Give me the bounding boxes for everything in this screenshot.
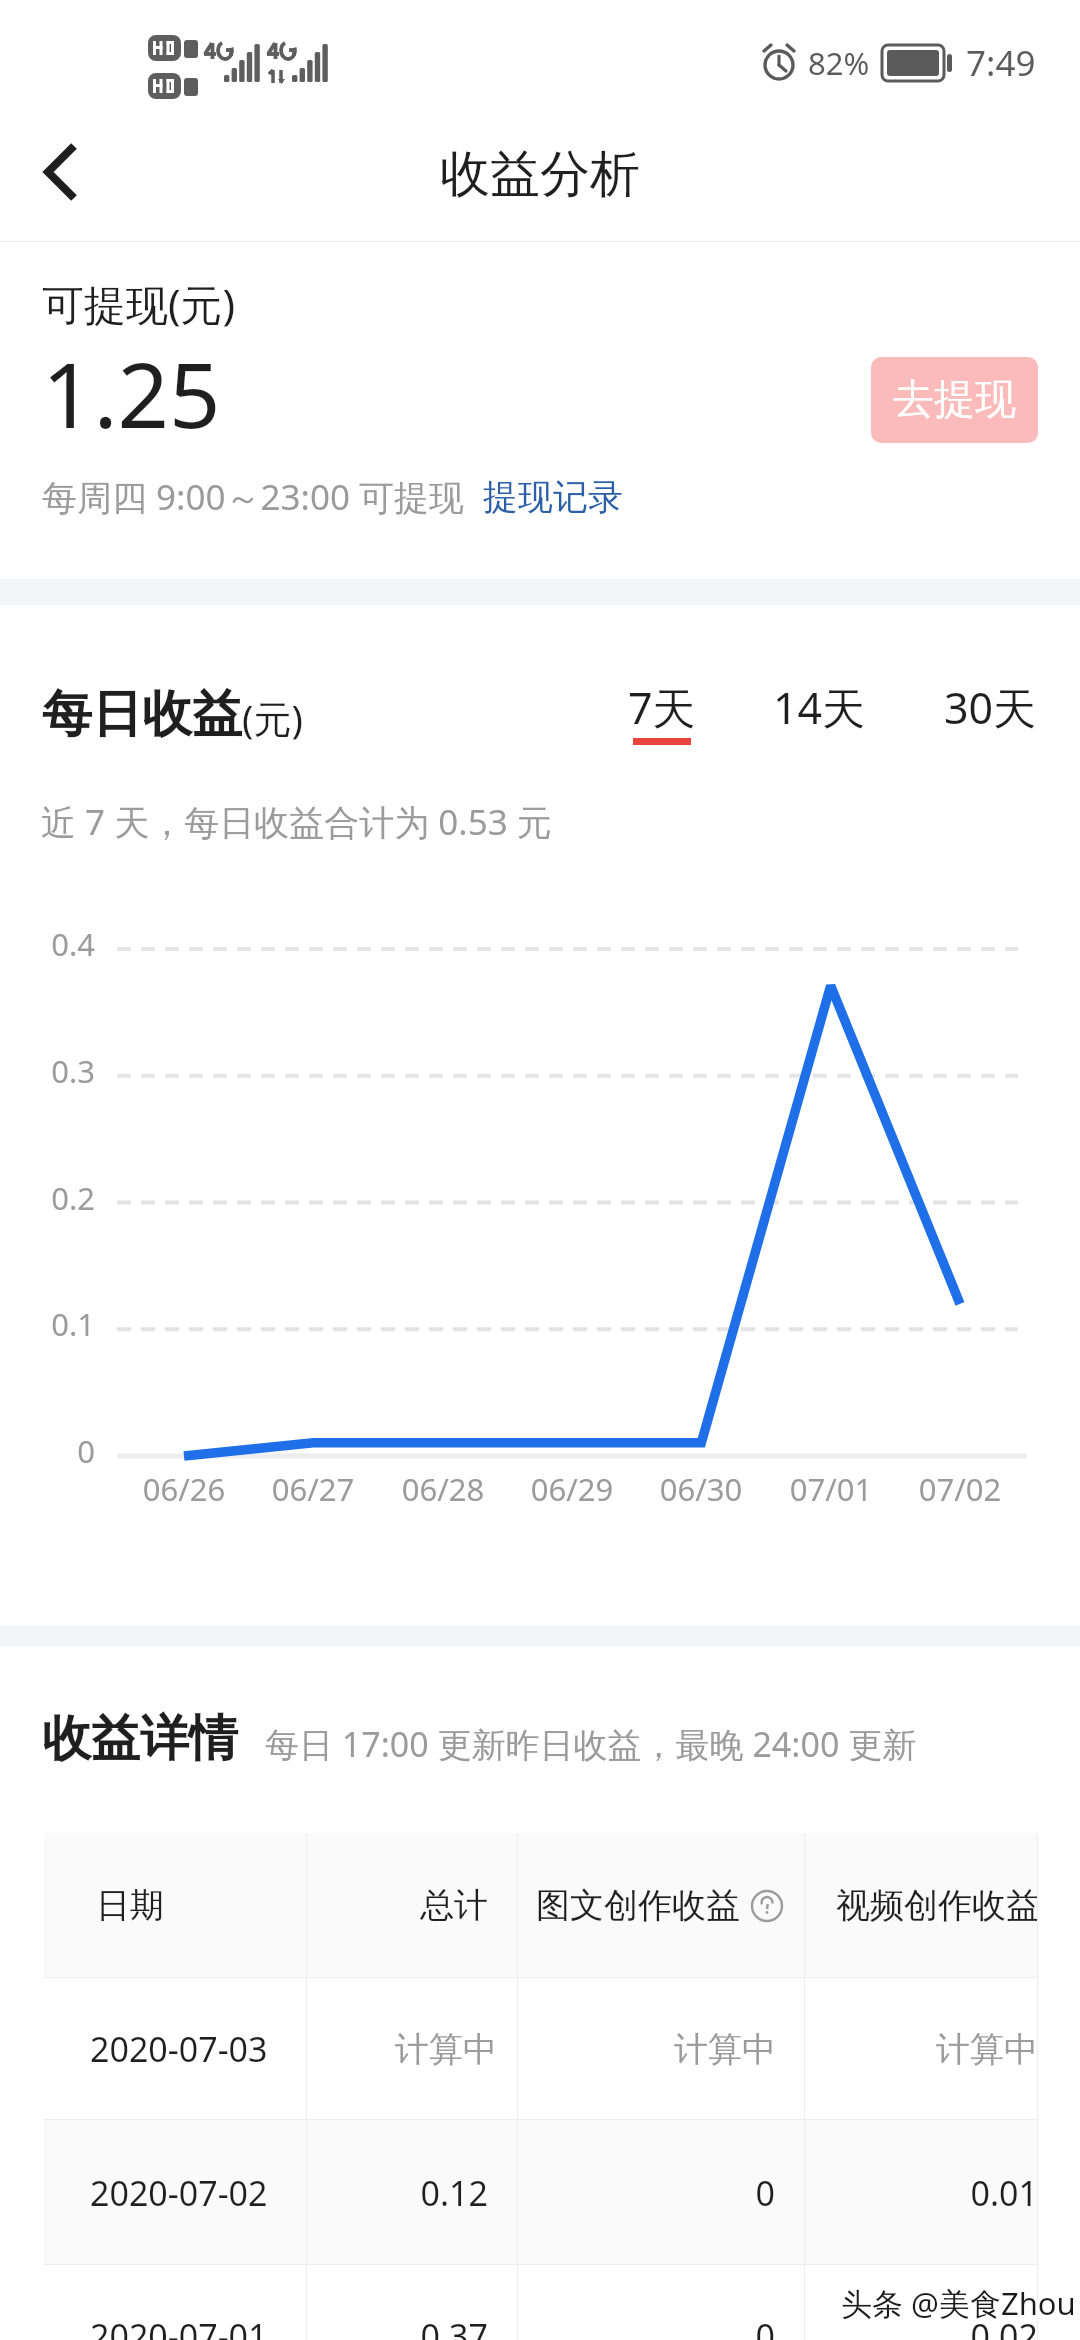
staticText: 头条 @美食Zhou: [841, 2282, 1076, 2324]
staticText: 0.3: [23, 1050, 95, 1092]
staticText: 2020-07-03: [90, 2026, 307, 2072]
staticText: 06/28: [373, 1468, 513, 1510]
staticText: 头条 @美食Zhou: [841, 2280, 1076, 2322]
staticText: 0.37: [307, 2313, 488, 2340]
staticText: 收益分析: [440, 143, 640, 206]
staticText: 06/26: [114, 1468, 254, 1510]
staticText: 0.02: [805, 2313, 1038, 2340]
button[interactable]: 去提现: [871, 357, 1038, 443]
staticText: 0.2: [23, 1177, 95, 1219]
staticText: 07/01: [761, 1468, 901, 1510]
staticText: 头条 @美食Zhou: [839, 2284, 1074, 2326]
staticText: 06/29: [502, 1468, 642, 1510]
staticText: 总计: [307, 1884, 488, 1927]
staticText: 82%: [808, 42, 870, 84]
staticText: 7天: [628, 678, 696, 737]
staticText: 2020-07-02: [90, 2170, 307, 2216]
staticText: 06/30: [631, 1468, 771, 1510]
staticText: 头条 @美食Zhou: [843, 2282, 1078, 2324]
staticText: 1.25: [42, 332, 221, 455]
staticText: 30天: [944, 678, 1037, 737]
button[interactable]: 7天: [616, 678, 708, 750]
button[interactable]: 30天: [925, 678, 1055, 750]
staticText: 去提现: [893, 374, 1016, 426]
button[interactable]: Back: [0, 120, 130, 242]
staticText: 14天: [773, 678, 866, 737]
staticText: 每周四 9:00～23:00 可提现: [42, 473, 465, 521]
staticText: 提现记录: [483, 475, 623, 519]
staticText: 06/27: [243, 1468, 383, 1510]
staticText: 2020-07-01: [90, 2313, 307, 2340]
staticText: 0.01: [805, 2170, 1038, 2216]
staticText: 近 7 天，每日收益合计为 0.53 元: [41, 798, 552, 846]
staticText: 计算中: [307, 2028, 497, 2071]
staticText: 每日 17:00 更新昨日收益，最晚 24:00 更新: [265, 1721, 917, 1767]
staticText: 0: [518, 2313, 775, 2340]
staticText: 头条 @美食Zhou: [839, 2282, 1074, 2324]
staticText: 每日收益: [42, 683, 242, 746]
staticText: 图文创作收益: [536, 1884, 740, 1927]
staticText: 0.1: [23, 1303, 95, 1345]
staticText: 可提现(元): [42, 275, 236, 332]
staticText: 收益详情: [42, 1708, 238, 1770]
staticText: 0: [23, 1430, 95, 1472]
staticText: 07/02: [890, 1468, 1030, 1510]
staticText: 计算中: [518, 2028, 776, 2071]
staticText: 0.12: [307, 2170, 488, 2216]
staticText: 头条 @美食Zhou: [839, 2280, 1074, 2322]
staticText: 7:49: [966, 39, 1036, 87]
staticText: 日期: [96, 1884, 307, 1927]
staticText: (元): [242, 692, 303, 744]
staticText: 视频创作收益: [836, 1884, 1038, 1927]
staticText: 头条 @美食Zhou: [843, 2284, 1078, 2326]
button[interactable]: 提现记录: [483, 469, 623, 525]
button[interactable]: 14天: [754, 678, 884, 750]
staticText: 头条 @美食Zhou: [841, 2284, 1076, 2326]
staticText: 头条 @美食Zhou: [843, 2280, 1078, 2322]
button[interactable]: About article creation earnings: [750, 1889, 784, 1923]
staticText: 0.4: [23, 923, 95, 965]
staticText: 计算中: [805, 2028, 1038, 2071]
staticText: 0: [518, 2170, 775, 2216]
